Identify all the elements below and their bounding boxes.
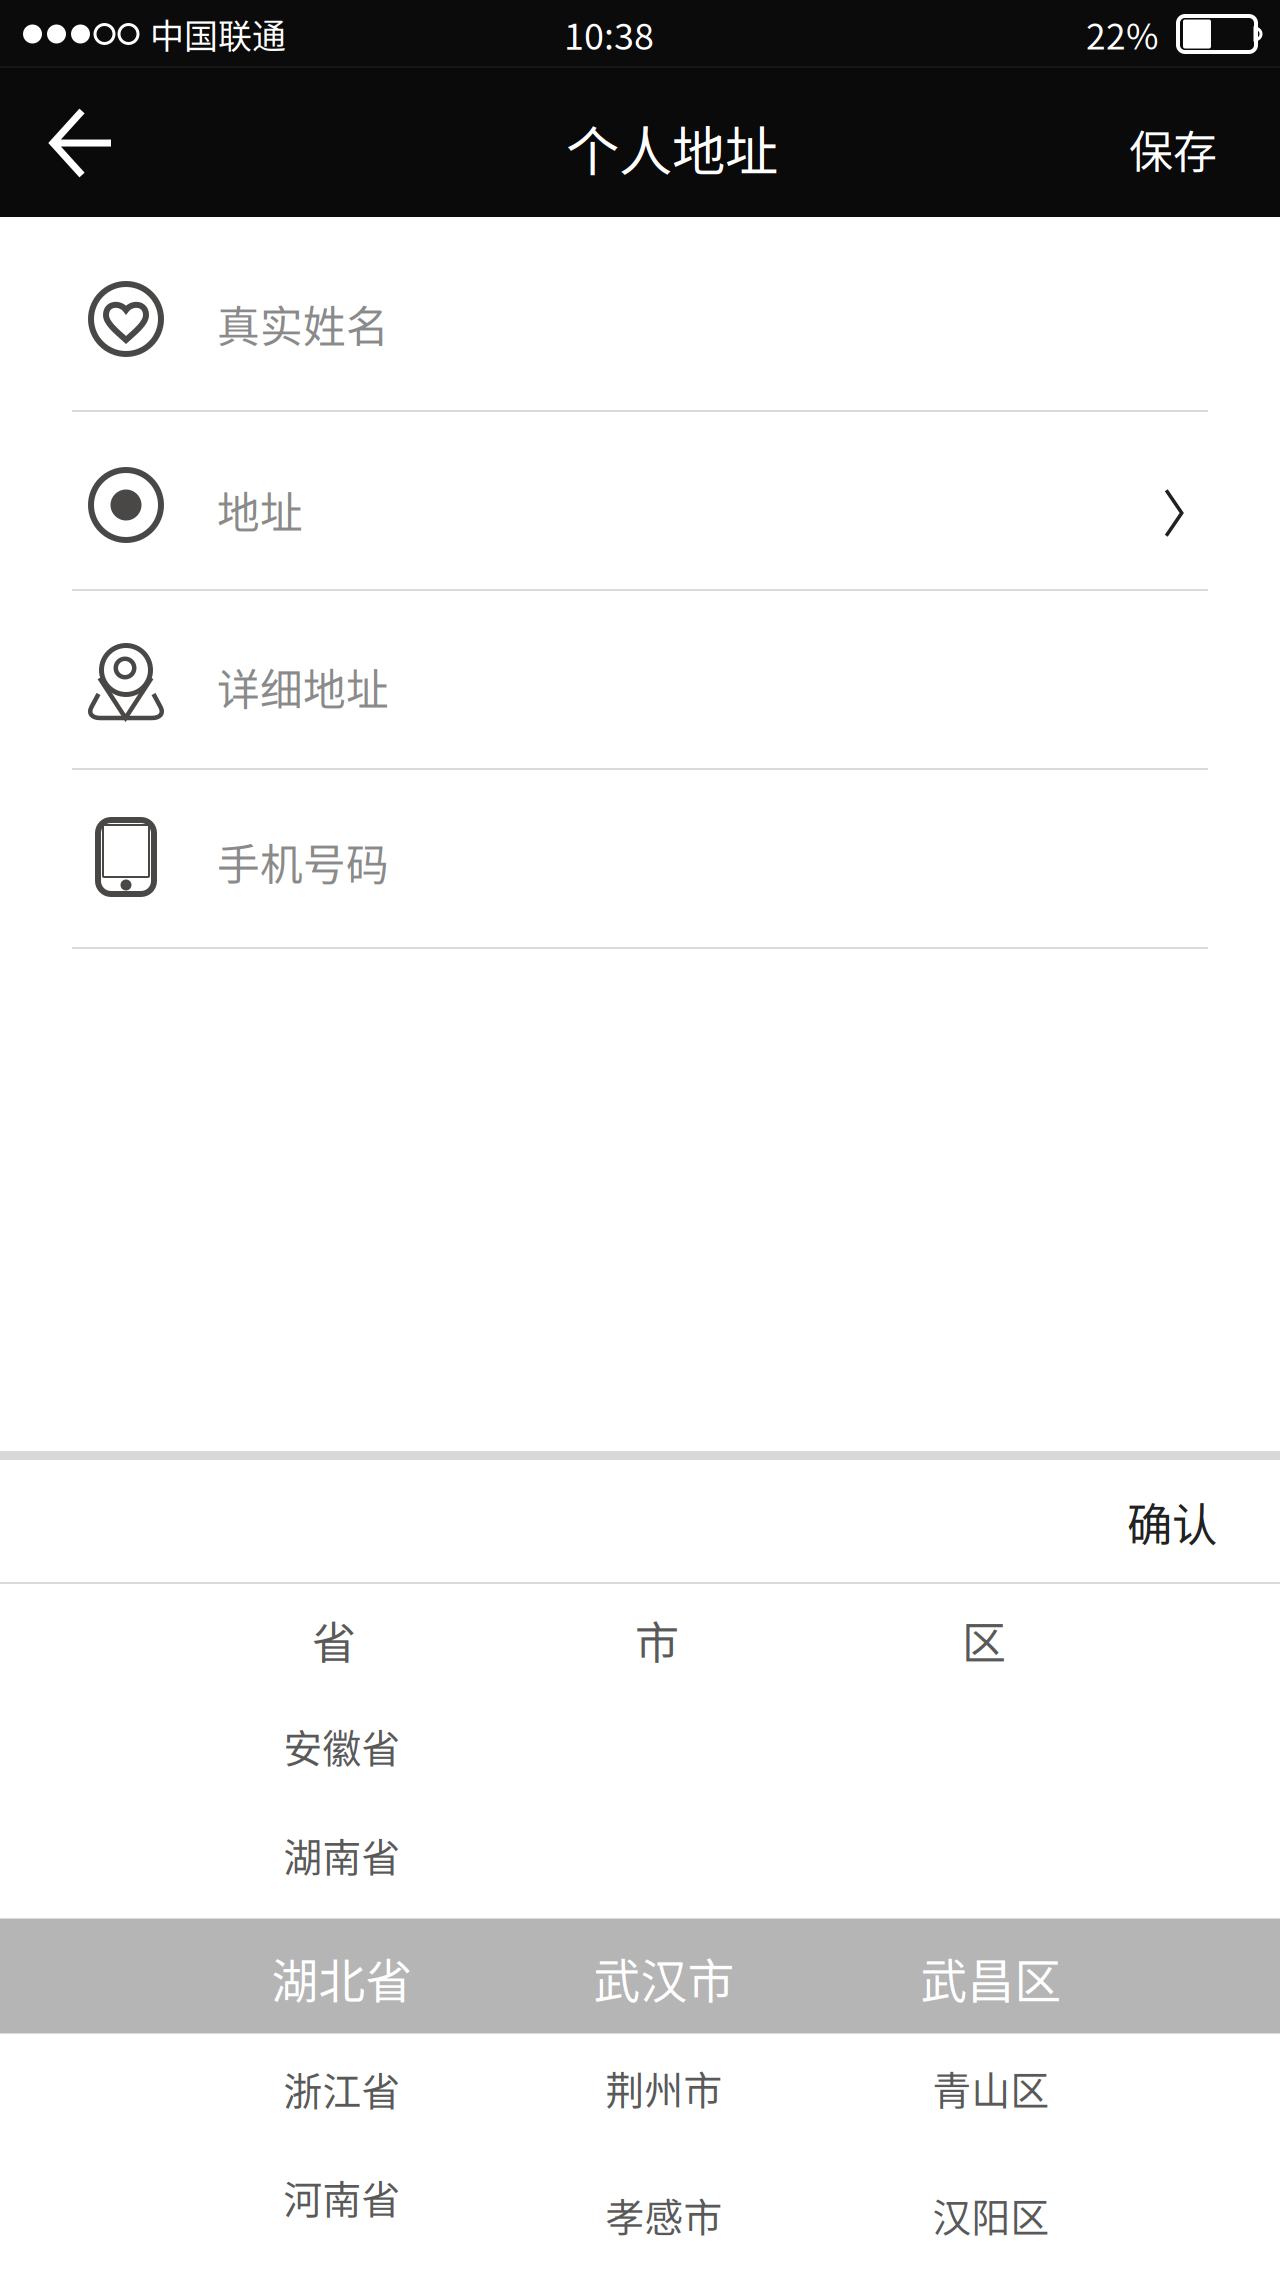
staticText: 10:38 bbox=[564, 8, 654, 60]
button[interactable]: 手机号码 bbox=[0, 0, 1280, 2277]
staticText: 荆州市 bbox=[605, 2060, 722, 2116]
staticText: 中国联通 bbox=[150, 9, 286, 59]
button[interactable]: 返回 bbox=[18, 69, 146, 217]
staticText: 个人地址 bbox=[566, 109, 778, 187]
staticText: 地址 bbox=[217, 479, 303, 541]
staticText: 浙江省 bbox=[283, 2061, 400, 2117]
staticText: 区 bbox=[962, 1608, 1006, 1672]
button[interactable]: 详细地址 bbox=[0, 0, 1280, 2277]
staticText: 青山区 bbox=[932, 2060, 1049, 2116]
staticText: 真实姓名 bbox=[217, 293, 389, 355]
staticText: 武昌区 bbox=[920, 1944, 1061, 2012]
staticText: 22% bbox=[1086, 8, 1159, 60]
button[interactable]: 确认 bbox=[1095, 1453, 1249, 1591]
button[interactable]: 保存 bbox=[1095, 78, 1251, 220]
staticText: 安徽省 bbox=[283, 1718, 400, 1774]
staticText: 武汉市 bbox=[593, 1944, 734, 2012]
staticText: 确认 bbox=[1127, 1489, 1217, 1555]
staticText: 孝感市 bbox=[605, 2187, 722, 2243]
staticText: 湖北省 bbox=[271, 1944, 412, 2012]
staticText: 保存 bbox=[1129, 117, 1217, 181]
staticText: 湖南省 bbox=[283, 1827, 400, 1883]
staticText: 市 bbox=[635, 1608, 679, 1672]
button[interactable]: 地址 bbox=[0, 0, 1280, 2277]
staticText: 省 bbox=[312, 1608, 356, 1672]
staticText: 手机号码 bbox=[217, 831, 389, 893]
button[interactable]: 真实姓名 bbox=[0, 0, 1280, 2277]
staticText: 详细地址 bbox=[217, 656, 389, 718]
staticText: 汉阳区 bbox=[932, 2187, 1049, 2243]
staticText: 河南省 bbox=[283, 2169, 400, 2225]
